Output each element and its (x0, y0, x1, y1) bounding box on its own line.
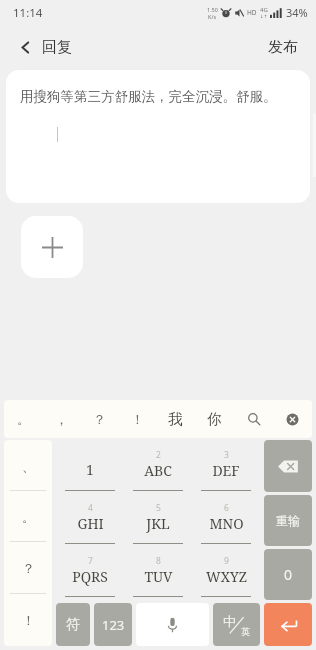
button[interactable]: 。 (4, 400, 42, 438)
button[interactable]: 发布 (250, 30, 316, 65)
staticText: 用搜狗等第三方舒服法，完全沉浸。舒服。 (20, 88, 277, 105)
button[interactable]: 7 (56, 547, 124, 600)
button[interactable]: 8 (124, 547, 192, 600)
button[interactable]: 、 (4, 440, 52, 491)
staticText: TUV (144, 567, 173, 586)
staticText: PQRS (72, 567, 108, 586)
staticText: 。 (22, 509, 35, 525)
button[interactable]: 5 (124, 494, 192, 547)
button[interactable]: 你 (195, 400, 234, 438)
button[interactable]: 1 (56, 440, 124, 494)
staticText: ？ (22, 560, 35, 576)
staticText: 7 (88, 555, 93, 567)
staticText: 、 (22, 458, 35, 474)
button[interactable]: Search (234, 400, 273, 438)
staticText: 34% (286, 5, 308, 20)
staticText: 回复 (42, 38, 72, 57)
staticText: K/s (208, 13, 217, 20)
staticText: 中 (223, 613, 236, 629)
button[interactable]: Enter (264, 603, 312, 646)
button[interactable]: 我 (156, 400, 195, 438)
button[interactable]: 4 (56, 494, 124, 547)
staticText: ！ (131, 411, 144, 427)
staticText: 2 (156, 449, 161, 461)
button[interactable]: Voice input (136, 603, 209, 646)
staticText: 6 (224, 502, 229, 514)
button[interactable]: 0 (264, 549, 312, 600)
staticText: 5 (156, 502, 161, 514)
staticText: 123 (102, 616, 125, 634)
staticText: 发布 (268, 38, 298, 57)
staticText: JKL (146, 514, 170, 533)
staticText: ABC (144, 461, 172, 480)
staticText: ↓↑ (260, 14, 268, 19)
button[interactable]: 2 (124, 440, 192, 494)
button[interactable]: Clear (273, 400, 312, 438)
staticText: HD (247, 8, 257, 17)
button[interactable]: ！ (4, 594, 52, 646)
staticText: 4 (88, 502, 93, 514)
staticText: 8 (156, 555, 161, 567)
staticText: 1 (86, 460, 94, 479)
staticText: 9 (224, 555, 229, 567)
staticText: 。 (17, 411, 30, 427)
staticText: DEF (212, 461, 240, 480)
button[interactable]: 符 (56, 603, 90, 646)
staticText: ！ (22, 612, 35, 628)
button[interactable]: ， (42, 400, 80, 438)
staticText: 符 (66, 616, 80, 634)
staticText: 你 (207, 410, 222, 428)
staticText: 0 (284, 565, 293, 584)
staticText: MNO (209, 514, 244, 533)
button[interactable]: ！ (118, 400, 156, 438)
staticText: GHI (77, 514, 104, 533)
button[interactable]: 123 (94, 603, 132, 646)
staticText: WXYZ (206, 567, 247, 586)
staticText: 3 (224, 449, 229, 461)
staticText: ， (55, 411, 68, 427)
other: Back (18, 40, 33, 55)
staticText: 重输 (276, 513, 300, 528)
staticText: 4G (260, 6, 268, 14)
button[interactable]: Add attachment (21, 216, 83, 278)
button[interactable]: ？ (80, 400, 118, 438)
button[interactable]: 6 (192, 494, 260, 547)
button[interactable]: 中 (213, 603, 260, 646)
staticText: ？ (93, 411, 106, 427)
staticText: 11:14 (13, 5, 43, 21)
staticText: 1.50 (207, 6, 218, 13)
button[interactable]: 。 (4, 491, 52, 542)
button[interactable]: 重输 (264, 495, 312, 546)
staticText: 英 (241, 626, 250, 637)
button[interactable]: ？ (4, 542, 52, 594)
button[interactable]: 3 (192, 440, 260, 494)
button[interactable]: Backspace (264, 440, 312, 492)
button[interactable]: 用搜狗等第三方舒服法，完全沉浸。舒服。 (6, 70, 310, 203)
button[interactable]: Back (0, 30, 86, 65)
button[interactable]: 9 (192, 547, 260, 600)
staticText: 我 (168, 410, 183, 428)
